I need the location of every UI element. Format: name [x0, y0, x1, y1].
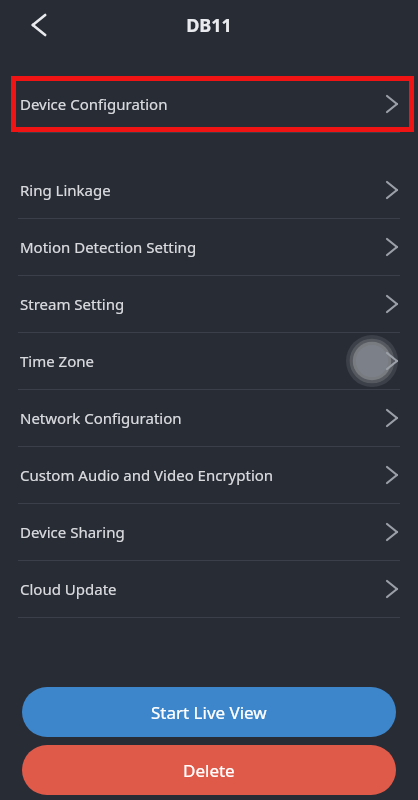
staticText: Custom Audio and Video Encryption: [20, 465, 274, 485]
staticText: Cloud Update: [20, 579, 117, 599]
button[interactable]: Back: [18, 4, 60, 46]
button[interactable]: Device Sharing: [0, 504, 418, 560]
staticText: Device Sharing: [20, 522, 125, 542]
button[interactable]: Start Live View: [22, 687, 396, 737]
button[interactable]: Ring Linkage: [0, 162, 418, 218]
staticText: Device Configuration: [20, 94, 168, 114]
staticText: Ring Linkage: [20, 180, 111, 200]
staticText: Start Live View: [151, 701, 267, 724]
button[interactable]: Delete: [22, 745, 396, 795]
button[interactable]: Custom Audio and Video Encryption: [0, 447, 418, 503]
staticText: DB11: [186, 13, 232, 38]
staticText: Motion Detection Setting: [20, 237, 197, 257]
button[interactable]: Time Zone: [0, 333, 418, 389]
staticText: Time Zone: [20, 351, 94, 371]
button[interactable]: Cloud Update: [0, 561, 418, 617]
button[interactable]: Network Configuration: [0, 390, 418, 446]
button[interactable]: Stream Setting: [0, 276, 418, 332]
staticText: Network Configuration: [20, 408, 182, 428]
button[interactable]: Device Configuration: [0, 76, 418, 132]
staticText: Stream Setting: [20, 294, 125, 314]
button[interactable]: Motion Detection Setting: [0, 219, 418, 275]
staticText: Delete: [183, 759, 235, 782]
